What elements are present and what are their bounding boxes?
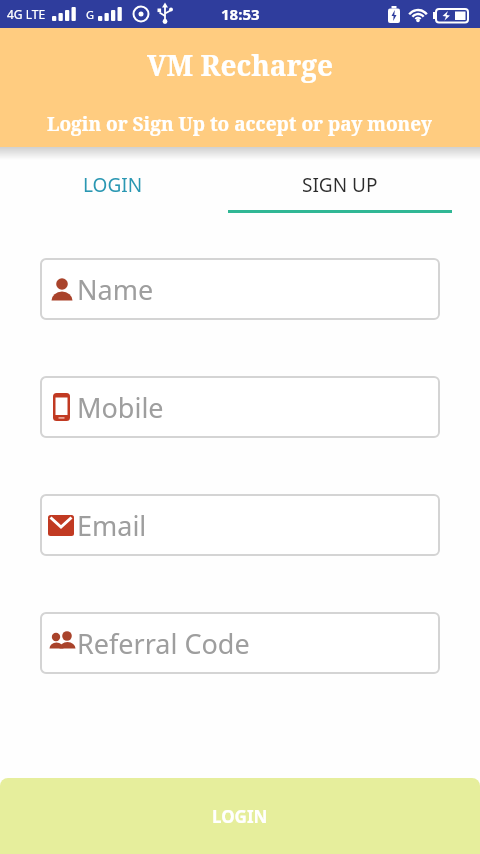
button[interactable]: LOGIN [0, 147, 226, 223]
button[interactable]: Mobile [40, 376, 440, 438]
staticText: VM Recharge [147, 46, 334, 84]
staticText: Mobile [77, 389, 164, 426]
staticText: G [86, 7, 95, 22]
staticText: Referral Code [77, 625, 250, 662]
staticText: Name [77, 271, 154, 308]
button[interactable]: Referral Code [40, 612, 440, 674]
staticText: LOGIN [212, 805, 268, 828]
staticText: Login or Sign Up to accept or pay money [47, 111, 433, 137]
staticText: SIGN UP [302, 172, 378, 198]
staticText: LOGIN [83, 172, 143, 198]
staticText: 18:53 [221, 4, 260, 24]
button[interactable]: SIGN UP [226, 147, 454, 223]
button[interactable]: Email [40, 494, 440, 556]
staticText: 4G LTE [7, 6, 46, 22]
button[interactable]: LOGIN [0, 778, 480, 854]
button[interactable]: Name [40, 258, 440, 320]
staticText: Email [77, 507, 147, 544]
